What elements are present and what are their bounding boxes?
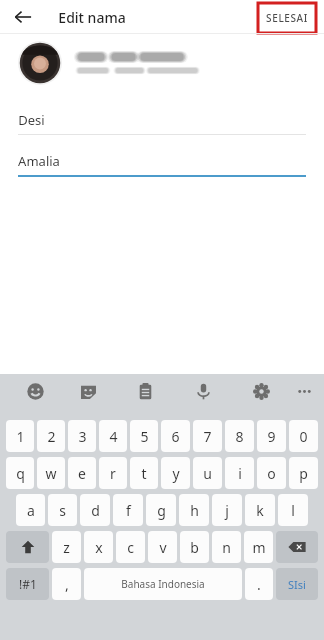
- staticText: SIsi: [288, 577, 306, 592]
- staticText: v: [159, 538, 167, 557]
- button[interactable]: b: [180, 531, 209, 563]
- staticText: Amalia: [18, 152, 60, 170]
- button[interactable]: 8: [225, 420, 254, 452]
- staticText: c: [127, 538, 134, 557]
- button[interactable]: m: [244, 531, 273, 563]
- button[interactable]: 5: [130, 420, 158, 452]
- staticText: 1: [16, 427, 25, 446]
- button[interactable]: Stickers: [71, 374, 105, 408]
- button[interactable]: Amalia: [0, 135, 324, 177]
- button[interactable]: e: [68, 457, 96, 489]
- staticText: 9: [267, 427, 276, 446]
- staticText: 2: [47, 427, 56, 446]
- button[interactable]: 4: [99, 420, 127, 452]
- button[interactable]: ,: [52, 568, 81, 600]
- staticText: o: [267, 464, 276, 483]
- button[interactable]: t: [130, 457, 158, 489]
- button[interactable]: Voice input: [186, 374, 220, 408]
- button[interactable]: [0, 34, 324, 92]
- button[interactable]: SELESAI: [258, 3, 316, 33]
- staticText: 6: [171, 427, 180, 446]
- button[interactable]: SIsi: [276, 568, 318, 600]
- button[interactable]: 6: [161, 420, 190, 452]
- staticText: m: [252, 538, 266, 557]
- button[interactable]: p: [289, 457, 318, 489]
- button[interactable]: 1: [6, 420, 34, 452]
- button[interactable]: s: [48, 494, 77, 526]
- staticText: p: [299, 464, 308, 483]
- button[interactable]: o: [257, 457, 286, 489]
- staticText: l: [291, 501, 295, 520]
- staticText: i: [238, 464, 242, 483]
- staticText: n: [222, 538, 231, 557]
- button[interactable]: Emoji: [18, 374, 52, 408]
- staticText: Edit nama: [58, 8, 126, 27]
- staticText: .: [257, 575, 261, 594]
- button[interactable]: q: [6, 457, 34, 489]
- button[interactable]: r: [99, 457, 127, 489]
- staticText: r: [110, 464, 116, 483]
- staticText: b: [190, 538, 199, 557]
- button[interactable]: 9: [257, 420, 286, 452]
- button[interactable]: a: [16, 494, 45, 526]
- button[interactable]: x: [84, 531, 113, 563]
- staticText: d: [91, 501, 100, 520]
- staticText: ,: [65, 575, 69, 594]
- button[interactable]: n: [212, 531, 241, 563]
- button[interactable]: l: [278, 494, 308, 526]
- button[interactable]: u: [193, 457, 222, 489]
- button[interactable]: h: [179, 494, 209, 526]
- staticText: x: [95, 538, 103, 557]
- staticText: e: [78, 464, 86, 483]
- button[interactable]: Bahasa Indonesia: [84, 568, 242, 600]
- button[interactable]: More options: [287, 374, 321, 408]
- button[interactable]: z: [52, 531, 81, 563]
- button[interactable]: w: [37, 457, 65, 489]
- staticText: w: [45, 464, 57, 483]
- button[interactable]: 0: [289, 420, 318, 452]
- staticText: 5: [140, 427, 149, 446]
- button[interactable]: 2: [37, 420, 65, 452]
- staticText: !#1: [19, 576, 37, 592]
- staticText: Desi: [18, 111, 45, 129]
- staticText: j: [225, 501, 229, 520]
- button[interactable]: 3: [68, 420, 96, 452]
- button[interactable]: Back: [10, 4, 36, 30]
- staticText: 7: [203, 427, 212, 446]
- button[interactable]: Desi: [0, 106, 324, 135]
- button[interactable]: .: [245, 568, 273, 600]
- staticText: g: [157, 501, 166, 520]
- button[interactable]: k: [245, 494, 275, 526]
- button[interactable]: v: [148, 531, 177, 563]
- button[interactable]: c: [116, 531, 145, 563]
- button[interactable]: Clipboard: [128, 374, 162, 408]
- button[interactable]: f: [113, 494, 143, 526]
- button[interactable]: y: [161, 457, 190, 489]
- staticText: 3: [78, 427, 87, 446]
- staticText: 8: [235, 427, 244, 446]
- button[interactable]: Shift: [6, 531, 49, 563]
- button[interactable]: Backspace: [276, 531, 318, 563]
- staticText: k: [256, 501, 264, 520]
- staticText: f: [126, 501, 131, 520]
- staticText: 4: [109, 427, 118, 446]
- button[interactable]: g: [146, 494, 176, 526]
- button[interactable]: 7: [193, 420, 222, 452]
- button[interactable]: j: [212, 494, 242, 526]
- button[interactable]: Keyboard settings: [244, 374, 278, 408]
- staticText: u: [203, 464, 212, 483]
- staticText: a: [27, 501, 35, 520]
- staticText: q: [16, 464, 25, 483]
- staticText: h: [190, 501, 199, 520]
- staticText: Bahasa Indonesia: [121, 577, 205, 591]
- staticText: y: [172, 464, 180, 483]
- staticText: z: [63, 538, 70, 557]
- button[interactable]: !#1: [6, 568, 49, 600]
- staticText: SELESAI: [266, 11, 308, 25]
- staticText: t: [141, 464, 147, 483]
- button[interactable]: d: [80, 494, 110, 526]
- staticText: 0: [299, 427, 308, 446]
- staticText: s: [59, 501, 66, 520]
- button[interactable]: i: [225, 457, 254, 489]
